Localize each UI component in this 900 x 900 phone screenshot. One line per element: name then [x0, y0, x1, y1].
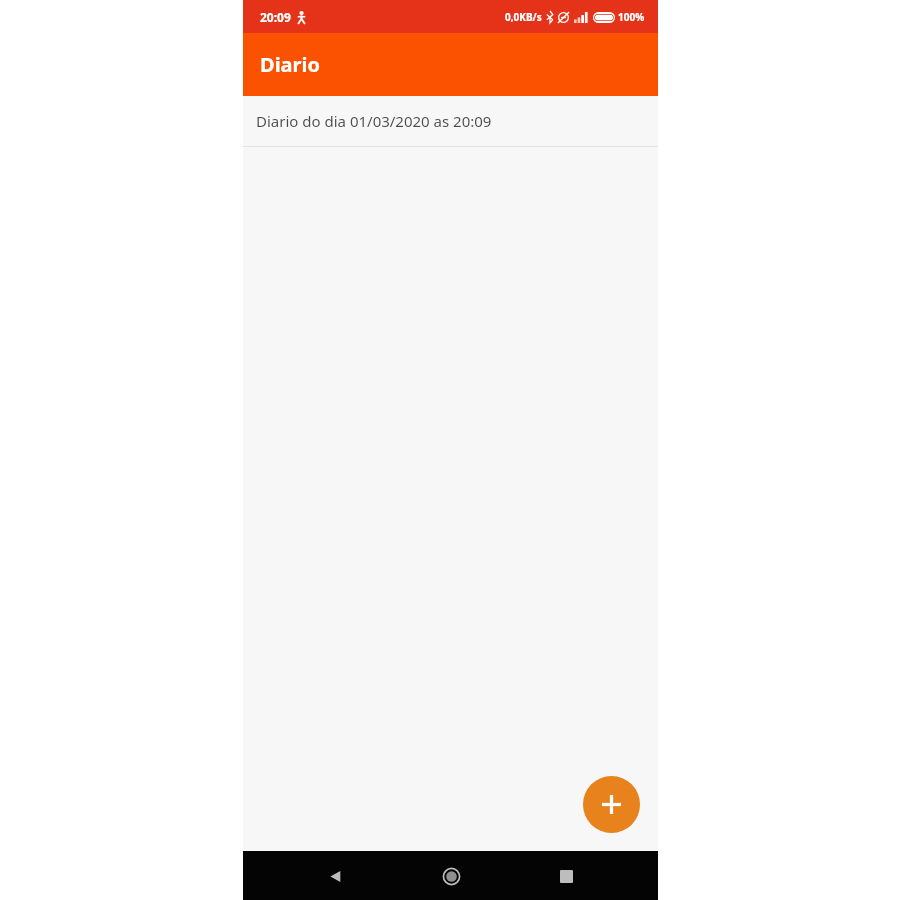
button[interactable]: Add diary entry [583, 776, 640, 833]
staticText: 100% [618, 10, 645, 24]
button[interactable]: Diario do dia 01/03/2020 as 20:09 [243, 96, 658, 147]
staticText: Diario [260, 51, 321, 78]
staticText: 0,0KB/s [505, 10, 542, 24]
button[interactable]: Home [427, 852, 475, 900]
button[interactable]: Recent apps [542, 852, 590, 900]
staticText: Diario do dia 01/03/2020 as 20:09 [256, 111, 492, 131]
staticText: 20:09 [260, 9, 291, 25]
button[interactable]: Back [311, 852, 359, 900]
